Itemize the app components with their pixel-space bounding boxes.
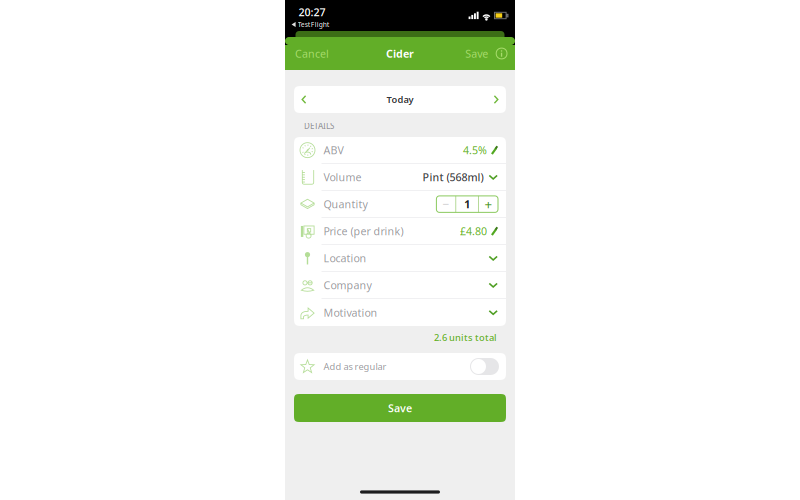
button[interactable]: Price (per drink): [294, 218, 506, 245]
button[interactable]: Information: [492, 42, 509, 65]
button[interactable]: Volume: [294, 164, 506, 191]
button[interactable]: Save: [461, 39, 492, 68]
staticText: ABV: [323, 143, 343, 157]
staticText: £4.80: [460, 224, 487, 238]
button[interactable]: Motivation: [294, 299, 506, 326]
staticText: Save: [465, 46, 488, 61]
staticText: TestFlight: [298, 20, 330, 29]
button[interactable]: Company: [294, 272, 506, 299]
staticText: −: [442, 196, 449, 212]
button[interactable]: Add as regular: [294, 353, 506, 380]
button[interactable]: ABV: [294, 137, 506, 164]
staticText: Location: [323, 251, 366, 265]
staticText: Save: [388, 401, 412, 415]
staticText: 20:27: [298, 5, 325, 19]
staticText: 2.6 units total: [434, 331, 497, 344]
button[interactable]: Previous day: [294, 87, 314, 112]
staticText: Pint (568ml): [422, 170, 483, 184]
staticText: Volume: [323, 170, 361, 184]
staticText: Cider: [386, 46, 414, 61]
staticText: Quantity: [323, 197, 367, 211]
button[interactable]: Location: [294, 245, 506, 272]
button[interactable]: Decrease quantity: [436, 196, 455, 212]
staticText: 1: [464, 197, 470, 211]
staticText: DETAILS: [304, 121, 334, 131]
button[interactable]: Next day: [486, 87, 506, 112]
staticText: Price (per drink): [323, 224, 403, 238]
staticText: Company: [323, 278, 371, 292]
button[interactable]: Cancel: [291, 39, 333, 68]
staticText: Cancel: [295, 46, 329, 61]
staticText: Today: [386, 93, 413, 106]
staticText: Motivation: [323, 305, 377, 320]
button[interactable]: Increase quantity: [479, 196, 498, 212]
button[interactable]: Save: [294, 394, 506, 422]
button[interactable]: Quantity: [294, 191, 506, 218]
staticText: Add as regular: [323, 360, 386, 373]
staticText: +: [484, 195, 492, 213]
staticText: 4.5%: [463, 143, 487, 157]
